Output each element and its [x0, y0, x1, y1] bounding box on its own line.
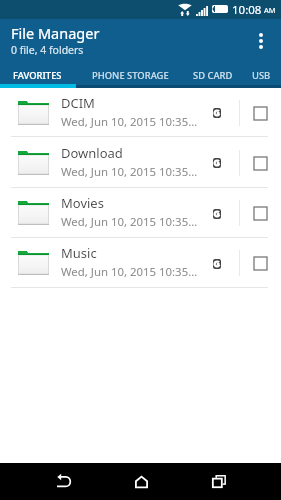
staticText: Music — [61, 244, 97, 262]
button[interactable]: Folder info — [204, 189, 230, 238]
button[interactable]: SD CARD — [185, 64, 241, 88]
staticText: AM — [264, 5, 276, 15]
staticText: Movies — [61, 194, 104, 212]
staticText: Wed, Jun 10, 2015 10:35… — [61, 114, 198, 130]
button[interactable]: Recent apps — [195, 463, 243, 500]
staticText: PHONE STORAGE — [92, 69, 169, 82]
staticText: Wed, Jun 10, 2015 10:35… — [61, 264, 198, 280]
button[interactable]: DCIM — [0, 88, 281, 137]
staticText: USB — [252, 69, 271, 82]
button[interactable]: Select folder — [246, 138, 274, 188]
button[interactable]: Folder info — [204, 239, 230, 288]
staticText: SD CARD — [193, 69, 233, 82]
staticText: DCIM — [61, 94, 95, 112]
button[interactable]: Folder info — [204, 138, 230, 188]
button[interactable]: More options — [240, 19, 281, 64]
staticText: 10:08 — [232, 2, 262, 18]
staticText: 0 file, 4 folders — [11, 43, 84, 57]
button[interactable]: Back — [40, 463, 88, 500]
button[interactable]: Download — [0, 137, 281, 188]
staticText: File Manager — [11, 23, 100, 43]
staticText: FAVORITES — [13, 69, 62, 82]
staticText: Wed, Jun 10, 2015 10:35… — [61, 214, 198, 230]
staticText: Wed, Jun 10, 2015 10:35… — [61, 164, 198, 180]
button[interactable]: Select folder — [246, 89, 274, 137]
button[interactable]: Select folder — [246, 189, 274, 238]
button[interactable]: Music — [0, 238, 281, 288]
button[interactable]: PHONE STORAGE — [75, 64, 185, 88]
staticText: Download — [61, 144, 123, 162]
button[interactable]: Movies — [0, 188, 281, 238]
button[interactable]: Folder info — [204, 89, 230, 137]
button[interactable]: Home — [117, 463, 165, 500]
button[interactable]: FAVORITES — [0, 64, 75, 88]
button[interactable]: Select folder — [246, 239, 274, 288]
button[interactable]: USB — [241, 64, 281, 88]
